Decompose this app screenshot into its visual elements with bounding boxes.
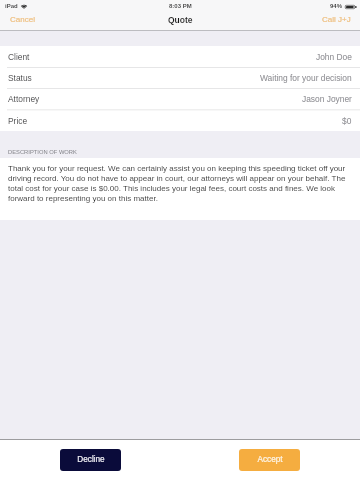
staticText: Call J+J [322, 15, 351, 24]
button[interactable]: Status [0, 67, 360, 88]
staticText: $0 [342, 116, 352, 125]
staticText: Cancel [10, 15, 35, 24]
staticText: Waiting for your decision [260, 73, 352, 82]
button[interactable]: Call J+J [312, 11, 360, 28]
staticText: iPad [5, 3, 18, 10]
button[interactable]: Price [0, 110, 360, 131]
staticText: Attorney [8, 94, 40, 103]
staticText: 8:03 PM [169, 3, 192, 10]
button[interactable]: Cancel [0, 11, 45, 28]
button[interactable]: Attorney [0, 88, 360, 109]
staticText: DESCRIPTION OF WORK [8, 149, 77, 155]
staticText: Status [8, 73, 32, 82]
staticText: Price [8, 116, 28, 125]
button[interactable]: Client [0, 46, 360, 67]
staticText: Accept [257, 455, 283, 464]
staticText: Client [8, 52, 30, 61]
staticText: Jason Joyner [302, 94, 352, 103]
button[interactable]: Decline [60, 449, 121, 471]
staticText: John Doe [316, 52, 352, 61]
button[interactable]: Accept [239, 449, 300, 471]
staticText: Quote [168, 15, 193, 24]
staticText: 94% [330, 3, 343, 10]
staticText: Decline [77, 455, 105, 464]
staticText: Thank you for your request. We can certa… [8, 164, 352, 203]
